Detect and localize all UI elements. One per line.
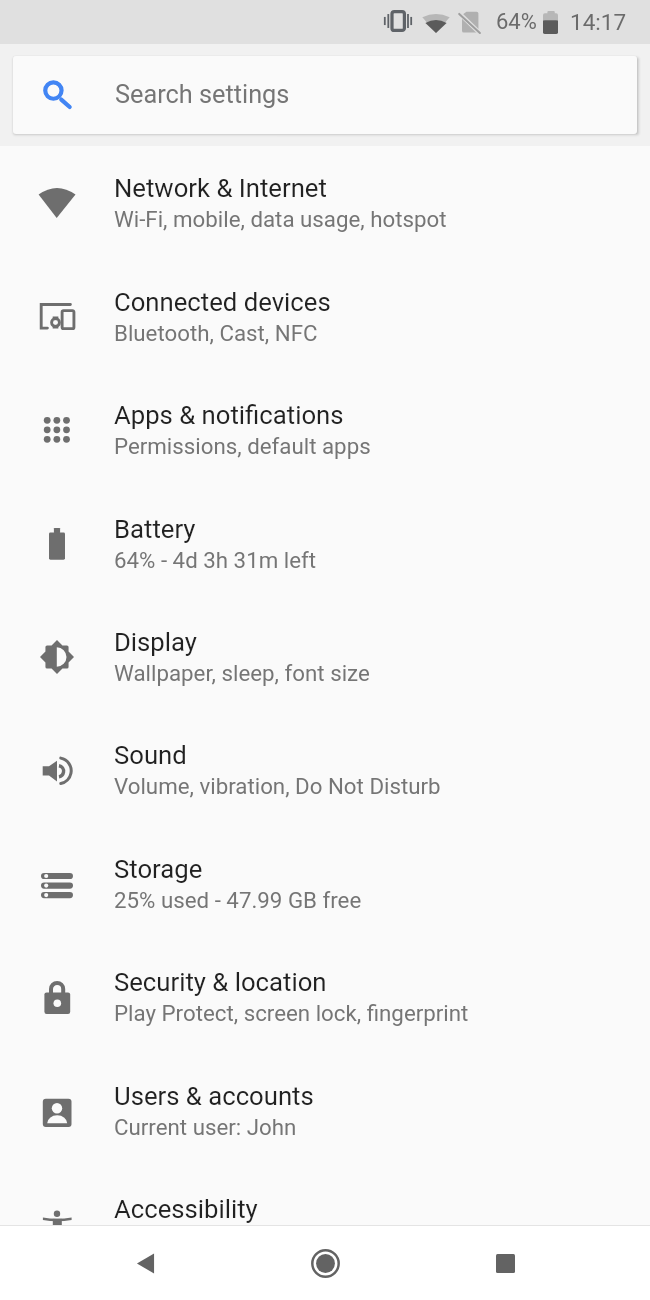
staticText: Security & location: [114, 967, 327, 997]
button[interactable]: Sound: [0, 713, 650, 826]
button[interactable]: Apps & notifications: [0, 373, 650, 486]
staticText: Connected devices: [114, 287, 331, 317]
staticText: Apps & notifications: [114, 400, 344, 430]
button[interactable]: Display: [0, 600, 650, 713]
staticText: Sound: [114, 740, 187, 770]
button[interactable]: Battery: [0, 487, 650, 600]
staticText: Network & Internet: [114, 173, 327, 203]
staticText: Accessibility: [114, 1194, 258, 1224]
staticText: 25% used - 47.99 GB free: [114, 887, 362, 913]
button[interactable]: Security & location: [0, 940, 650, 1053]
button[interactable]: Search settings: [13, 56, 637, 134]
staticText: Play Protect, screen lock, fingerprint: [114, 1000, 469, 1026]
staticText: Bluetooth, Cast, NFC: [114, 320, 318, 346]
staticText: 14:17: [570, 9, 627, 35]
button[interactable]: Network & Internet: [0, 146, 650, 259]
button[interactable]: Accessibility: [0, 1167, 650, 1225]
staticText: 64% - 4d 3h 31m left: [114, 547, 317, 573]
staticText: 64%: [496, 9, 537, 35]
staticText: Display: [114, 627, 197, 657]
button[interactable]: Connected devices: [0, 260, 650, 373]
staticText: Wi-Fi, mobile, data usage, hotspot: [114, 206, 447, 232]
button[interactable]: Recents: [465, 1226, 545, 1300]
staticText: Current user: John: [114, 1114, 297, 1140]
staticText: Search settings: [115, 80, 290, 110]
button[interactable]: Back: [105, 1226, 185, 1300]
button[interactable]: Users & accounts: [0, 1054, 650, 1167]
button[interactable]: Home: [285, 1226, 365, 1300]
staticText: Users & accounts: [114, 1081, 314, 1111]
staticText: Volume, vibration, Do Not Disturb: [114, 773, 441, 799]
staticText: Wallpaper, sleep, font size: [114, 660, 370, 686]
button[interactable]: Storage: [0, 827, 650, 940]
staticText: Permissions, default apps: [114, 433, 371, 459]
staticText: Storage: [114, 854, 203, 884]
staticText: Battery: [114, 514, 196, 544]
